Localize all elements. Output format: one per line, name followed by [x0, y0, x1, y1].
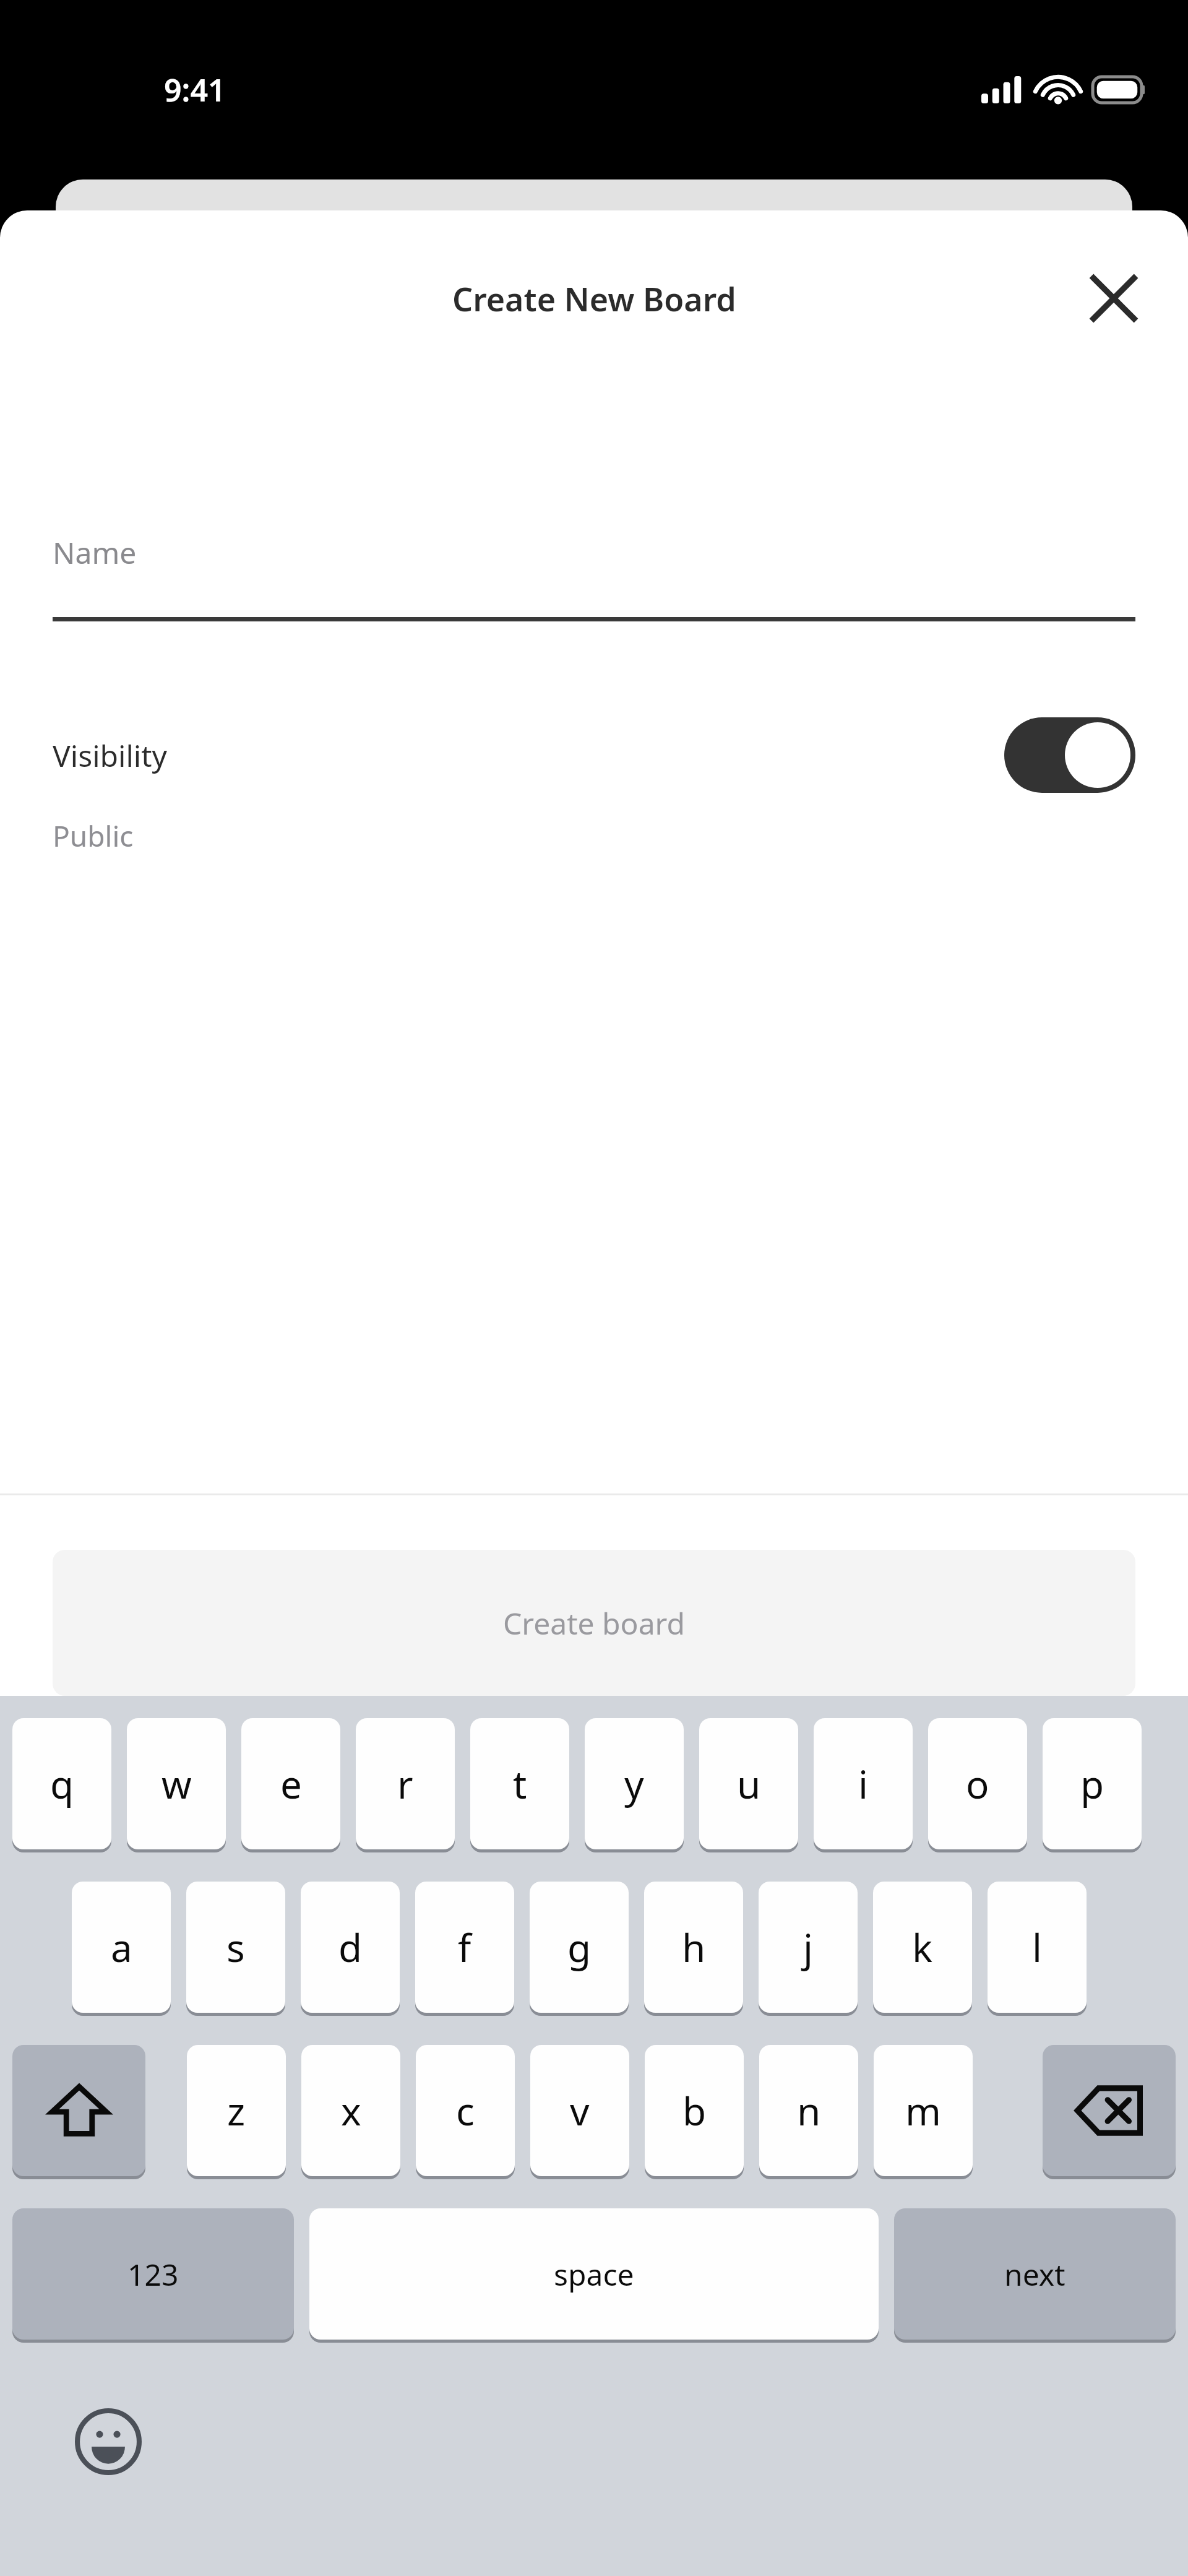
button[interactable]: i [814, 1718, 913, 1849]
staticText: Create board [503, 1603, 685, 1643]
staticText: Visibility [53, 735, 168, 776]
staticText: u [737, 1758, 761, 1810]
button[interactable]: z [187, 2045, 286, 2176]
button[interactable]: Emoji keyboard [68, 2401, 148, 2482]
staticText: o [966, 1758, 989, 1810]
staticText: t [513, 1758, 527, 1810]
staticText: space [554, 2254, 634, 2294]
button[interactable]: w [127, 1718, 226, 1849]
button[interactable]: 123 [12, 2208, 294, 2340]
button[interactable]: Visibility toggle, on [1004, 717, 1135, 793]
button[interactable]: p [1043, 1718, 1142, 1849]
staticText: 9:41 [164, 69, 226, 111]
button[interactable]: Close [1077, 261, 1151, 335]
button[interactable]: x [301, 2045, 400, 2176]
button[interactable]: Create board [53, 1550, 1135, 1696]
staticText: q [50, 1758, 74, 1810]
button[interactable]: t [470, 1718, 569, 1849]
button[interactable]: y [585, 1718, 684, 1849]
staticText: Create New Board [452, 277, 736, 321]
button[interactable]: Name [53, 532, 1135, 621]
button[interactable]: e [241, 1718, 340, 1849]
staticText: c [456, 2085, 475, 2137]
staticText: l [1032, 1921, 1042, 1973]
staticText: next [1004, 2254, 1065, 2294]
button[interactable]: k [873, 1882, 972, 2013]
staticText: v [570, 2085, 590, 2137]
button[interactable]: Shift [12, 2045, 145, 2176]
staticText: e [280, 1758, 302, 1810]
staticText: p [1080, 1758, 1104, 1810]
staticText: s [226, 1921, 245, 1973]
button[interactable]: Backspace [1043, 2045, 1176, 2176]
staticText: i [858, 1758, 868, 1810]
button[interactable]: b [645, 2045, 744, 2176]
button[interactable]: m [874, 2045, 973, 2176]
button[interactable]: h [644, 1882, 743, 2013]
staticText: Public [53, 816, 134, 855]
button[interactable]: space [309, 2208, 879, 2340]
button[interactable]: f [415, 1882, 514, 2013]
button[interactable]: s [186, 1882, 285, 2013]
staticText: f [458, 1921, 471, 1973]
button[interactable]: r [356, 1718, 455, 1849]
staticText: r [397, 1758, 413, 1810]
button[interactable]: c [416, 2045, 515, 2176]
button[interactable]: u [699, 1718, 798, 1849]
staticText: 123 [127, 2254, 179, 2294]
staticText: h [682, 1921, 706, 1973]
button[interactable]: Visibility [53, 717, 1135, 793]
staticText: d [338, 1921, 363, 1973]
button[interactable]: d [301, 1882, 400, 2013]
staticText: j [803, 1921, 813, 1973]
staticText: g [567, 1921, 592, 1973]
staticText: x [341, 2085, 361, 2137]
button[interactable]: j [759, 1882, 858, 2013]
staticText: a [111, 1921, 132, 1973]
button[interactable]: l [988, 1882, 1087, 2013]
button[interactable]: g [530, 1882, 629, 2013]
button[interactable]: o [928, 1718, 1027, 1849]
staticText: Name [53, 532, 137, 573]
staticText: n [797, 2085, 821, 2137]
staticText: b [682, 2085, 707, 2137]
button[interactable]: q [12, 1718, 111, 1849]
staticText: m [905, 2085, 941, 2137]
staticText: z [227, 2085, 246, 2137]
staticText: k [912, 1921, 933, 1973]
staticText: y [624, 1758, 644, 1810]
staticText: w [161, 1758, 192, 1810]
button[interactable]: n [759, 2045, 858, 2176]
button[interactable]: a [72, 1882, 171, 2013]
button[interactable]: v [530, 2045, 629, 2176]
button[interactable]: next [894, 2208, 1176, 2340]
